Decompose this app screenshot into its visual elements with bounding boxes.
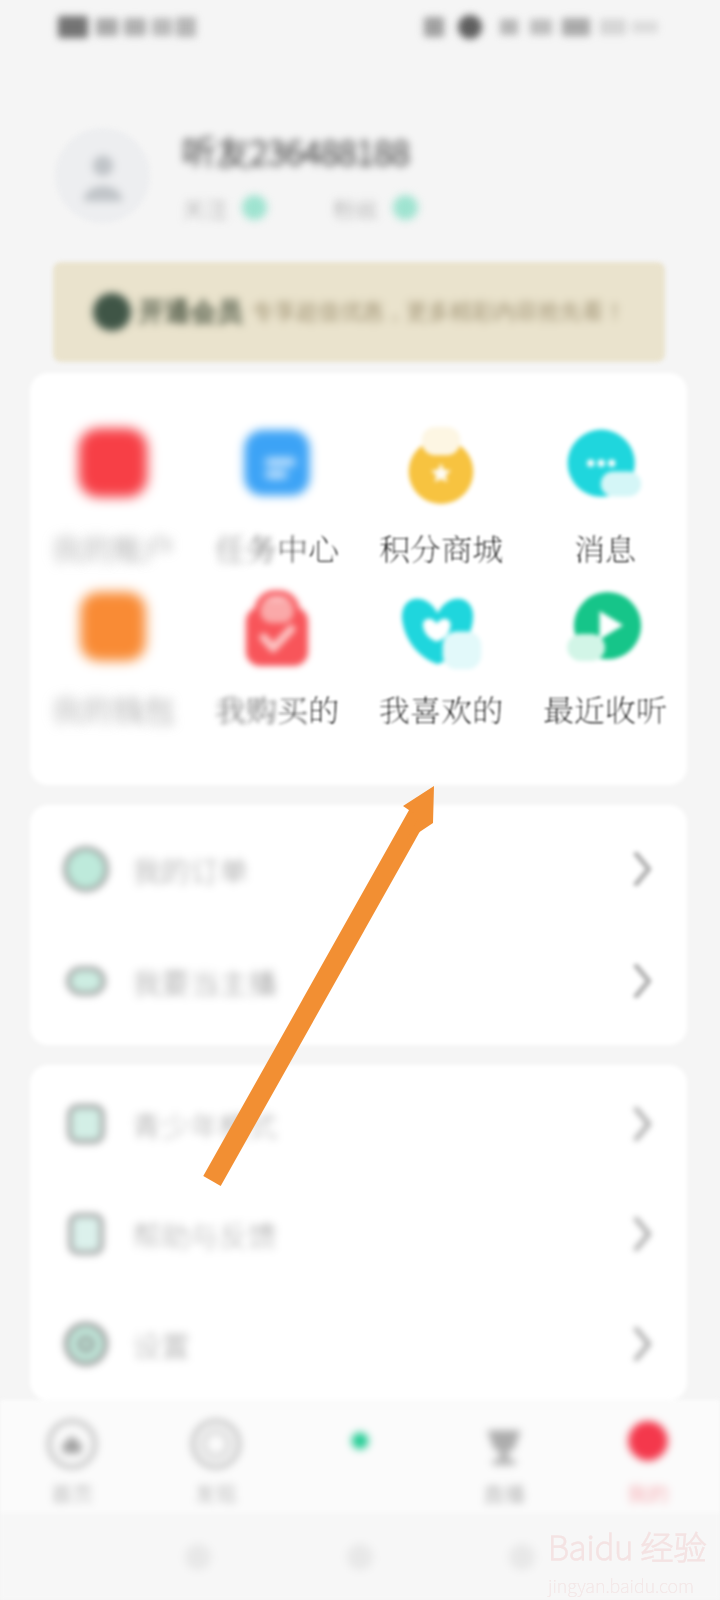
staticText: 我要当主播 bbox=[132, 960, 278, 1002]
button[interactable]: 我 bbox=[30, 686, 195, 736]
button[interactable]: 我的 bbox=[576, 1410, 720, 1508]
staticText: 购 bbox=[246, 686, 277, 731]
staticText: 听 bbox=[636, 686, 667, 731]
button[interactable]: 消 bbox=[523, 525, 687, 575]
button[interactable]: 我 bbox=[30, 525, 195, 575]
button[interactable]: Home bbox=[347, 1544, 373, 1570]
staticText: 我 bbox=[51, 686, 82, 731]
button[interactable]: 听友236488188 bbox=[55, 125, 720, 225]
staticText: 设置 bbox=[132, 1323, 191, 1365]
staticText: 买 bbox=[277, 686, 308, 731]
staticText: 分 bbox=[410, 525, 441, 570]
staticText: 息 bbox=[605, 525, 636, 570]
staticText: 近 bbox=[574, 686, 605, 731]
staticText: 的 bbox=[82, 525, 113, 570]
staticText: 心 bbox=[308, 525, 339, 570]
staticText: 青少年模式 bbox=[132, 1103, 278, 1145]
staticText: 户 bbox=[144, 525, 175, 570]
staticText: 积 bbox=[379, 525, 410, 570]
staticText: 粉丝 bbox=[333, 191, 379, 224]
staticText: 包 bbox=[144, 686, 175, 731]
button[interactable]: 任 bbox=[195, 525, 359, 575]
staticText: 听友236488188 bbox=[182, 126, 410, 175]
staticText: 欢 bbox=[441, 686, 472, 731]
staticText: 消 bbox=[574, 525, 605, 570]
button[interactable]: 帮助与反馈 bbox=[30, 1179, 687, 1289]
button[interactable]: Back bbox=[185, 1544, 211, 1570]
staticText: 中 bbox=[277, 525, 308, 570]
staticText: 专享超值优惠，更多精彩内容抢先看！ bbox=[252, 298, 626, 326]
button[interactable]: 设置 bbox=[30, 1289, 687, 1399]
staticText: 我的订单 bbox=[132, 848, 249, 890]
staticText: 我 bbox=[51, 525, 82, 570]
button[interactable]: 开通会员 bbox=[53, 262, 665, 362]
staticText: 关注 bbox=[182, 191, 228, 224]
staticText: 最 bbox=[543, 686, 574, 731]
button[interactable]: 我 bbox=[195, 686, 359, 736]
staticText: 我 bbox=[379, 686, 410, 731]
button[interactable]: 我要当主播 bbox=[30, 925, 687, 1037]
staticText: 城 bbox=[472, 525, 503, 570]
staticText: 商 bbox=[441, 525, 472, 570]
button[interactable]: 我的订单 bbox=[30, 813, 687, 925]
button[interactable]: 直播 bbox=[432, 1410, 576, 1508]
staticText: 钱 bbox=[113, 686, 144, 731]
staticText: 我的 bbox=[627, 1478, 669, 1508]
button[interactable]: 录音 bbox=[288, 1410, 432, 1508]
staticText: jingyan.baidu.com bbox=[548, 1572, 695, 1598]
button[interactable]: 发现 bbox=[144, 1410, 288, 1508]
staticText: 发现 bbox=[195, 1478, 237, 1508]
staticText: Baidu 经验 bbox=[548, 1522, 707, 1570]
staticText: 直播 bbox=[483, 1478, 525, 1508]
staticText: 务 bbox=[246, 525, 277, 570]
staticText: 喜 bbox=[410, 686, 441, 731]
staticText: 的 bbox=[308, 686, 339, 731]
staticText: 账 bbox=[113, 525, 144, 570]
staticText: 任 bbox=[215, 525, 246, 570]
staticText: 的 bbox=[472, 686, 503, 731]
button[interactable]: Recents bbox=[509, 1544, 535, 1570]
button[interactable]: 我 bbox=[359, 686, 523, 736]
button[interactable]: 首页 bbox=[0, 1410, 144, 1508]
staticText: 帮助与反馈 bbox=[132, 1213, 278, 1255]
staticText: 收 bbox=[605, 686, 636, 731]
button[interactable]: 积 bbox=[359, 525, 523, 575]
staticText: 我 bbox=[215, 686, 246, 731]
staticText: 首页 bbox=[51, 1478, 93, 1508]
staticText: 的 bbox=[82, 686, 113, 731]
button[interactable]: 最 bbox=[523, 686, 687, 736]
staticText: 开通会员 bbox=[138, 296, 242, 329]
button[interactable]: 青少年模式 bbox=[30, 1069, 687, 1179]
